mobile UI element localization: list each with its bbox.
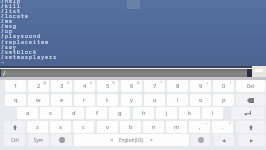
staticText: b <box>129 123 133 131</box>
button[interactable]: d <box>63 107 84 119</box>
button[interactable]: Left <box>214 134 234 146</box>
staticText: l <box>212 109 214 117</box>
staticText: $ <box>90 80 93 85</box>
staticText: s <box>49 109 52 117</box>
staticText: /op <box>1 28 14 34</box>
button[interactable]: 8 <box>167 80 188 92</box>
button[interactable]: Backspace <box>236 94 265 106</box>
staticText: /playsound <box>1 33 42 39</box>
staticText: x <box>59 123 63 131</box>
staticText: - <box>184 80 186 85</box>
button[interactable]: . <box>212 121 233 133</box>
staticText: q <box>14 96 18 104</box>
button[interactable]: y <box>121 94 142 106</box>
button[interactable]: 3 <box>51 80 72 92</box>
staticText: a <box>26 109 30 117</box>
button[interactable]: z <box>27 121 48 133</box>
button[interactable]: n <box>143 121 164 133</box>
button[interactable]: j <box>156 107 177 119</box>
button[interactable]: Enter <box>231 107 264 119</box>
staticText: k <box>188 109 192 117</box>
button[interactable]: 0 <box>213 80 234 92</box>
button[interactable]: c <box>73 121 94 133</box>
button[interactable]: e <box>51 94 72 106</box>
staticText: , <box>199 123 201 131</box>
button[interactable]: 2 <box>28 80 49 92</box>
button[interactable]: Send <box>252 66 266 77</box>
staticText: @ <box>43 80 47 85</box>
button[interactable]: a <box>17 107 38 119</box>
button[interactable]: 1 <box>5 80 26 92</box>
staticText: ? <box>229 121 231 126</box>
staticText: z <box>36 123 39 131</box>
staticText: * <box>160 80 163 85</box>
staticText: /setmaxplayers <box>1 54 58 60</box>
button[interactable]: Space <box>74 134 189 146</box>
staticText: / <box>2 69 7 78</box>
button[interactable]: v <box>97 121 118 133</box>
button[interactable]: 9 <box>190 80 211 92</box>
staticText: /list <box>1 8 22 14</box>
button[interactable]: 6 <box>121 80 142 92</box>
staticText: % <box>112 80 116 85</box>
staticText: /replaceitem <box>1 39 50 45</box>
staticText: g <box>118 109 122 117</box>
button[interactable]: b <box>120 121 141 133</box>
staticText: p <box>222 96 226 104</box>
staticText: u <box>153 96 157 104</box>
button[interactable]: Ctrl <box>4 134 25 146</box>
button[interactable]: Sym <box>28 134 49 146</box>
staticText: English(US) <box>119 137 144 143</box>
button[interactable]: o <box>190 94 211 106</box>
staticText: ◀ <box>110 138 113 142</box>
staticText: 5 <box>106 82 110 90</box>
button[interactable]: x <box>50 121 71 133</box>
staticText: j <box>166 109 168 117</box>
button[interactable]: 4 <box>74 80 95 92</box>
staticText: ◀ <box>222 138 226 143</box>
staticText: e <box>60 96 64 104</box>
button[interactable]: / <box>0 69 247 78</box>
button[interactable]: l <box>202 107 223 119</box>
staticText: 2 <box>37 82 41 90</box>
button[interactable]: p <box>213 94 234 106</box>
staticText: 7 <box>153 82 157 90</box>
button[interactable]: k <box>179 107 200 119</box>
button[interactable]: Settings <box>191 134 210 146</box>
button[interactable]: w <box>28 94 49 106</box>
staticText: i <box>177 96 179 104</box>
staticText: h <box>142 109 146 117</box>
staticText: n <box>152 123 156 131</box>
button[interactable]: r <box>74 94 95 106</box>
button[interactable]: f <box>86 107 107 119</box>
button[interactable]: 5 <box>97 80 118 92</box>
staticText: ! <box>206 121 208 126</box>
button[interactable]: g <box>109 107 130 119</box>
staticText: 9 <box>199 82 203 90</box>
staticText: … <box>1 58 6 64</box>
button[interactable]: m <box>166 121 187 133</box>
staticText: Ctrl <box>11 137 19 143</box>
staticText: /kill <box>1 3 22 9</box>
staticText: /say <box>1 44 18 50</box>
button[interactable]: s <box>40 107 61 119</box>
staticText: # <box>67 80 70 85</box>
button[interactable]: h <box>133 107 154 119</box>
button[interactable]: Emoji <box>51 134 72 146</box>
staticText: y <box>130 96 133 104</box>
button[interactable]: , <box>189 121 210 133</box>
button[interactable]: Shift <box>4 121 25 133</box>
staticText: o <box>199 96 203 104</box>
button[interactable]: q <box>5 94 26 106</box>
button[interactable]: Del <box>236 80 265 92</box>
button[interactable]: u <box>144 94 165 106</box>
staticText: Del <box>247 83 255 89</box>
staticText: ▶ <box>250 138 254 143</box>
button[interactable]: t <box>97 94 118 106</box>
button[interactable]: 7 <box>144 80 165 92</box>
button[interactable]: Shift <box>236 121 265 133</box>
staticText: 8 <box>176 82 180 90</box>
staticText: /locate <box>1 13 30 19</box>
button[interactable]: Right <box>239 134 265 146</box>
button[interactable]: i <box>167 94 188 106</box>
